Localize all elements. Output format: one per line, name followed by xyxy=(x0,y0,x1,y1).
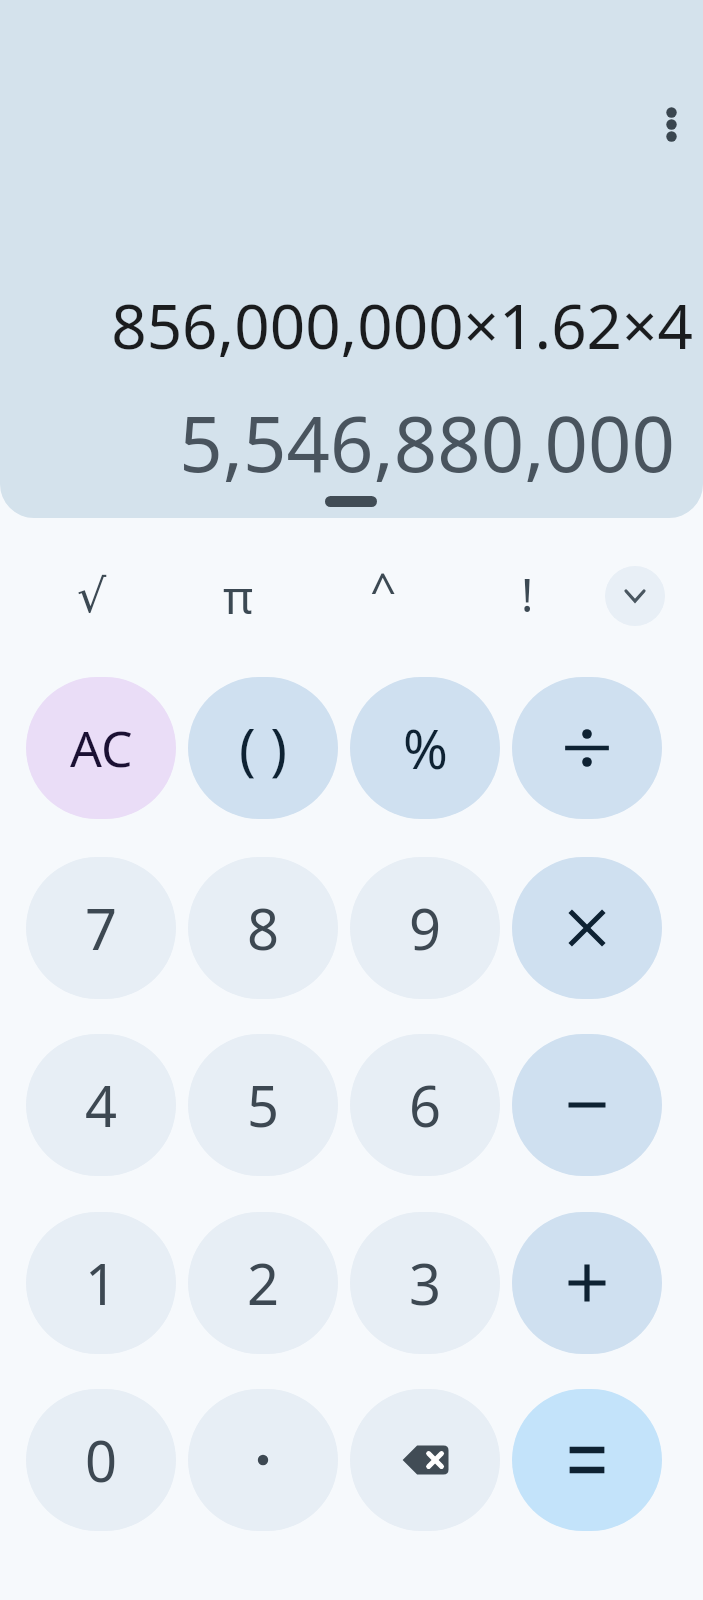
button[interactable]: Backspace xyxy=(350,1389,500,1531)
staticText: π xyxy=(223,565,254,628)
staticText: 7 xyxy=(85,890,118,966)
staticText: √ xyxy=(77,569,107,623)
button[interactable]: 9 xyxy=(350,857,500,999)
staticText: 2 xyxy=(247,1245,280,1321)
staticText: ( ) xyxy=(239,710,288,786)
staticText: 0 xyxy=(85,1422,118,1498)
button[interactable]: 0 xyxy=(26,1389,176,1531)
button[interactable]: Decimal point xyxy=(188,1389,338,1531)
button[interactable]: ! xyxy=(491,558,563,630)
button[interactable]: More options xyxy=(614,88,686,160)
button[interactable]: Percent xyxy=(350,677,500,819)
button[interactable]: Divide xyxy=(512,677,662,819)
button[interactable]: Parentheses xyxy=(188,677,338,819)
staticText: 1 xyxy=(85,1245,118,1321)
staticText: 4 xyxy=(85,1067,118,1143)
staticText: ! xyxy=(521,563,534,626)
button[interactable]: Multiply xyxy=(512,857,662,999)
button[interactable]: 8 xyxy=(188,857,338,999)
button[interactable]: 4 xyxy=(26,1034,176,1176)
button[interactable]: π xyxy=(202,560,274,632)
staticText: AC xyxy=(70,714,133,782)
button[interactable]: 7 xyxy=(26,857,176,999)
button[interactable]: 5 xyxy=(188,1034,338,1176)
staticText: 3 xyxy=(409,1245,442,1321)
button[interactable]: 3 xyxy=(350,1212,500,1354)
staticText: 5,546,880,000 xyxy=(179,391,675,495)
button[interactable]: AC xyxy=(26,677,176,819)
button[interactable]: Equals xyxy=(512,1389,662,1531)
staticText: 856,000,000×1.62×4 xyxy=(111,283,693,367)
staticText: 5 xyxy=(247,1067,280,1143)
button[interactable]: Expand functions xyxy=(605,566,665,626)
button[interactable]: ^ xyxy=(347,552,419,624)
button[interactable]: 1 xyxy=(26,1212,176,1354)
button[interactable]: Plus xyxy=(512,1212,662,1354)
button[interactable]: √ xyxy=(56,560,128,632)
button[interactable]: Minus xyxy=(512,1034,662,1176)
staticText: 6 xyxy=(409,1067,442,1143)
button[interactable]: 6 xyxy=(350,1034,500,1176)
staticText: 8 xyxy=(247,890,280,966)
staticText: % xyxy=(403,711,448,785)
staticText: 9 xyxy=(409,890,442,966)
staticText: ^ xyxy=(370,557,397,620)
button[interactable]: 2 xyxy=(188,1212,338,1354)
